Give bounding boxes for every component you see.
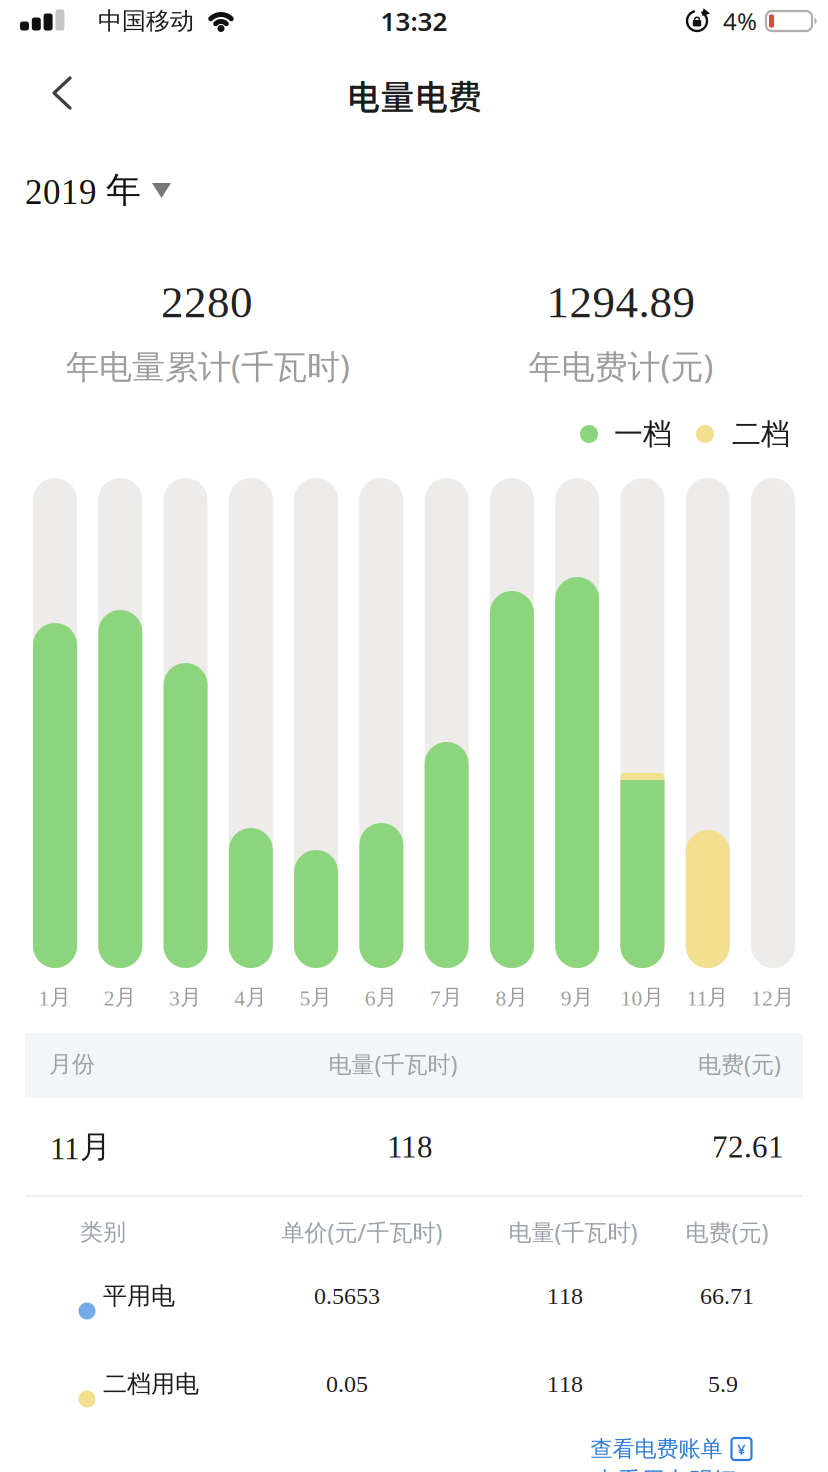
staticText: 一档 [614, 416, 672, 452]
staticText: 8月 [495, 983, 528, 1011]
staticText: 3月 [169, 983, 202, 1011]
staticText: 1月 [38, 983, 71, 1011]
staticText: 11月 [687, 983, 729, 1011]
staticText: 5月 [300, 983, 333, 1011]
staticText: 118 [547, 1283, 583, 1309]
staticText: 平用电 [103, 1281, 175, 1311]
staticText: 电量电费 [346, 70, 482, 120]
button[interactable]: 3月 [163, 478, 207, 968]
button[interactable]: 8月 [490, 478, 534, 968]
staticText: 二档用电 [103, 1369, 199, 1399]
staticText: 7月 [430, 983, 463, 1011]
staticText: 月份 [49, 1049, 95, 1078]
staticText: 1294.89 [546, 277, 695, 327]
staticText: 66.71 [700, 1283, 754, 1309]
button[interactable]: 1月 [33, 478, 77, 968]
staticText: 11月 [50, 1127, 111, 1167]
button[interactable]: 返回 [34, 64, 90, 122]
staticText: 2280 [161, 277, 253, 327]
staticText: 72.61 [712, 1130, 784, 1164]
button[interactable]: 10月 [620, 478, 664, 968]
staticText: 5.9 [708, 1371, 738, 1397]
staticText: 查看用电明细 [593, 1466, 737, 1472]
staticText: 0.5653 [314, 1283, 380, 1309]
button[interactable]: 6月 [359, 478, 403, 968]
staticText: 电费(元) [685, 1216, 768, 1248]
button[interactable]: 5月 [294, 478, 338, 968]
staticText: 12月 [751, 983, 795, 1011]
staticText: 2019 年 [25, 168, 141, 212]
button[interactable]: 查看电费账单 [590, 1427, 751, 1471]
button[interactable]: 4月 [229, 478, 273, 968]
staticText: 4月 [234, 983, 267, 1011]
staticText: ¥ [737, 1439, 746, 1459]
staticText: 类别 [80, 1217, 126, 1246]
staticText: 电量(千瓦时) [508, 1216, 637, 1248]
staticText: 二档 [732, 416, 790, 452]
button[interactable]: 9月 [555, 478, 599, 968]
staticText: 13:32 [380, 3, 447, 39]
staticText: 中国移动 [98, 6, 194, 36]
button[interactable]: 11月 [686, 478, 730, 968]
staticText: 6月 [365, 983, 398, 1011]
button[interactable]: 2月 [98, 478, 142, 968]
staticText: 年电量累计(千瓦时) [66, 343, 350, 388]
button[interactable]: 7月 [425, 478, 469, 968]
button[interactable]: 选择年份 [25, 159, 325, 221]
staticText: 单价(元/千瓦时) [281, 1216, 442, 1248]
staticText: 年电费计(元) [528, 343, 713, 388]
staticText: 2月 [104, 983, 137, 1011]
staticText: 0.05 [326, 1371, 368, 1397]
staticText: 查看电费账单 [590, 1435, 722, 1463]
staticText: 118 [547, 1371, 583, 1397]
staticText: 9月 [561, 983, 594, 1011]
staticText: 4% [723, 5, 757, 37]
staticText: 10月 [620, 983, 664, 1011]
staticText: 118 [387, 1130, 433, 1164]
staticText: 电费(元) [698, 1048, 781, 1080]
staticText: 电量(千瓦时) [328, 1048, 457, 1080]
